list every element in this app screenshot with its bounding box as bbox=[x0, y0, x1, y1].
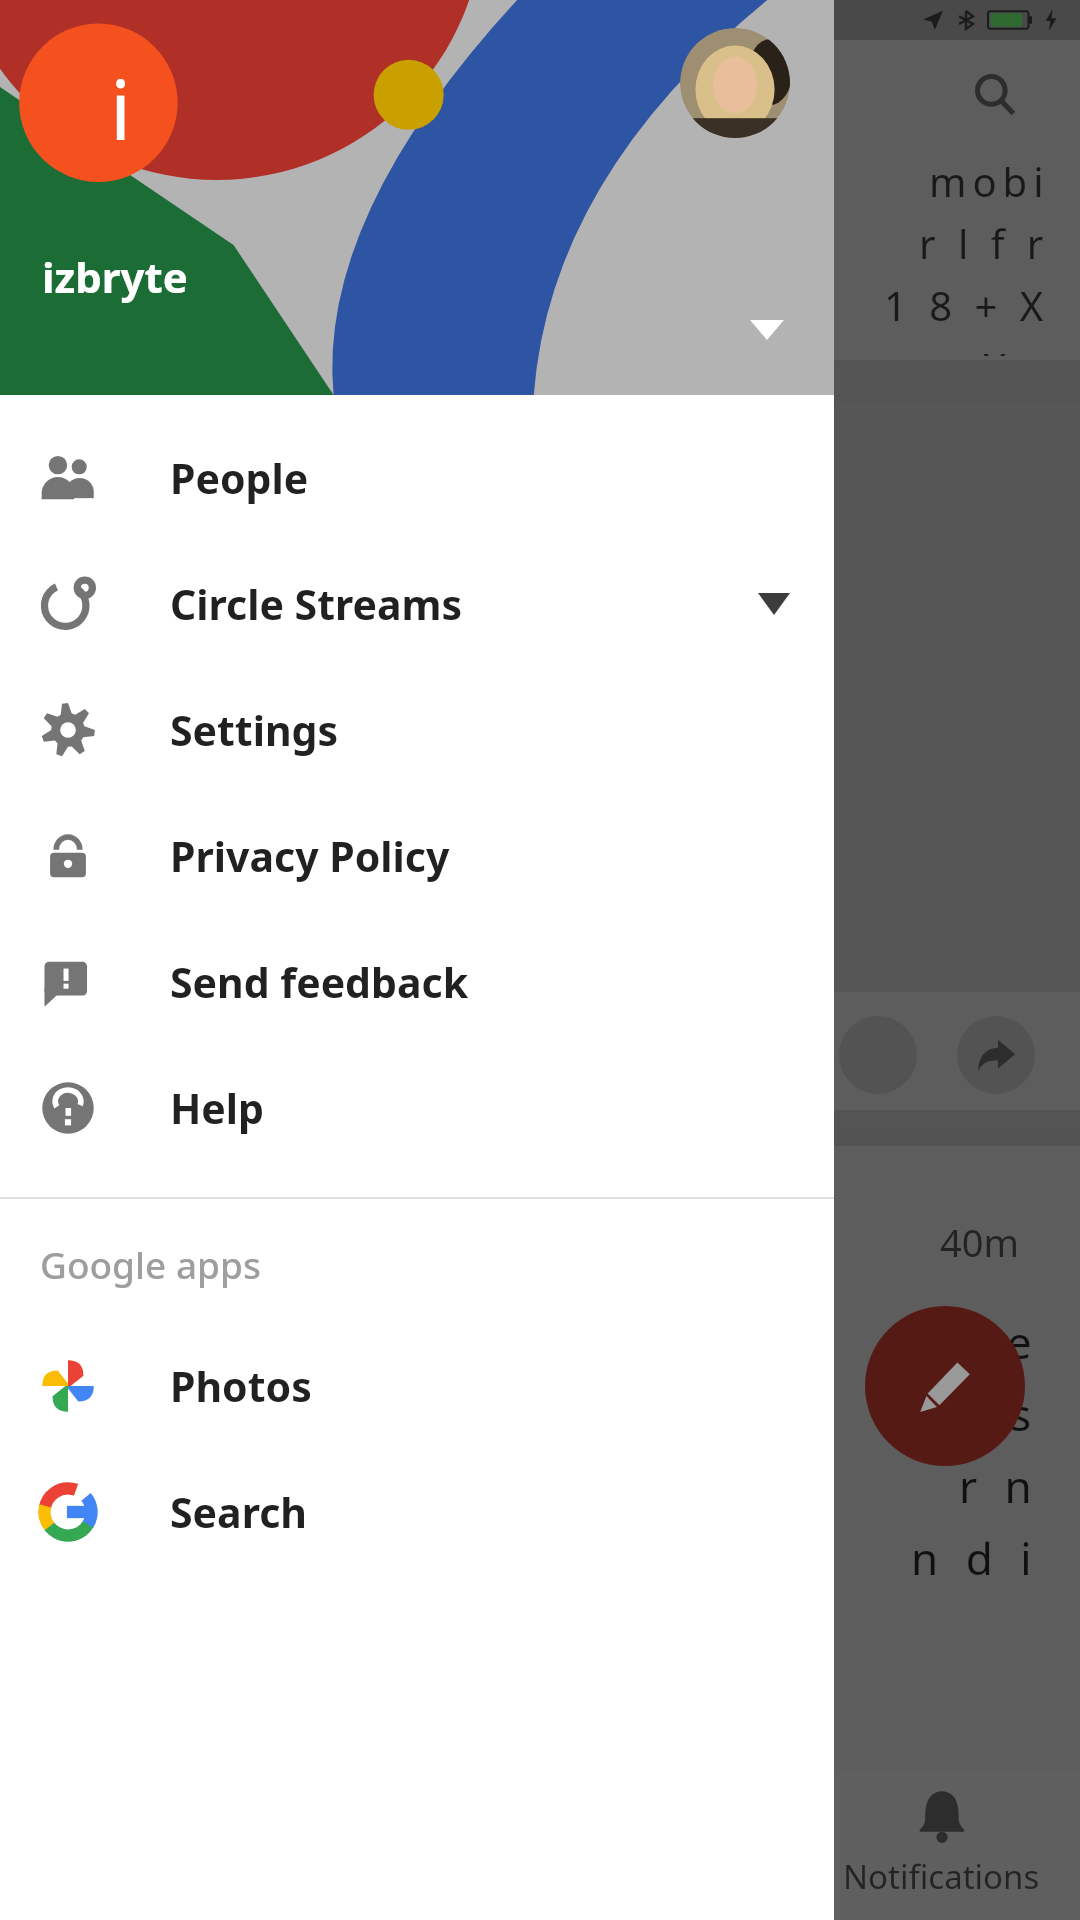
button[interactable]: Circle Streams bbox=[0, 541, 834, 667]
staticText: Notifications bbox=[843, 1854, 1040, 1899]
button[interactable]: Help bbox=[0, 1045, 834, 1171]
staticText: mobi bbox=[929, 154, 1050, 208]
staticText: Settings bbox=[170, 702, 339, 758]
staticText: Search bbox=[170, 1484, 307, 1540]
button[interactable]: Photos bbox=[0, 1323, 834, 1449]
button[interactable]: Search bbox=[0, 1449, 834, 1575]
button[interactable]: Settings bbox=[0, 667, 834, 793]
button[interactable]: i bbox=[0, 0, 834, 395]
staticText: Privacy Policy bbox=[170, 828, 450, 884]
staticText: n d i bbox=[911, 1528, 1040, 1588]
button[interactable]: Privacy Policy bbox=[0, 793, 834, 919]
staticText: People bbox=[170, 450, 309, 506]
staticText: Circle Streams bbox=[170, 576, 463, 632]
button[interactable]: People bbox=[0, 415, 834, 541]
staticText: 1 8 + X bbox=[884, 278, 1050, 332]
staticText: r n bbox=[959, 1456, 1040, 1516]
staticText: 40m bbox=[940, 1216, 1020, 1268]
staticText: a y X… bbox=[895, 340, 1050, 356]
staticText: s bbox=[1010, 1384, 1040, 1444]
button[interactable]: Send feedback bbox=[0, 919, 834, 1045]
staticText: Send feedback bbox=[170, 954, 469, 1010]
staticText: i e bbox=[968, 1312, 1040, 1372]
staticText: r l f r bbox=[919, 216, 1050, 270]
button[interactable]: Compose post bbox=[865, 1306, 1025, 1466]
staticText: i bbox=[110, 52, 132, 164]
button[interactable]: Switch account bbox=[736, 299, 798, 361]
button[interactable]: Profile photo bbox=[680, 28, 790, 138]
staticText: Google apps bbox=[40, 1239, 261, 1289]
staticText: Photos bbox=[170, 1358, 312, 1414]
staticText: izbryte bbox=[42, 248, 188, 305]
staticText: Help bbox=[170, 1080, 264, 1136]
